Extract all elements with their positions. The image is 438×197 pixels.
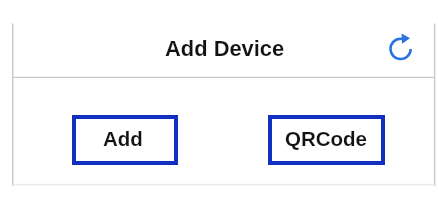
button[interactable]: Add: [72, 115, 178, 165]
button[interactable]: Refresh: [384, 32, 418, 66]
staticText: Add Device: [165, 36, 285, 60]
staticText: Add: [103, 127, 143, 150]
staticText: QRCode: [285, 127, 367, 150]
button[interactable]: QRCode: [268, 115, 385, 165]
